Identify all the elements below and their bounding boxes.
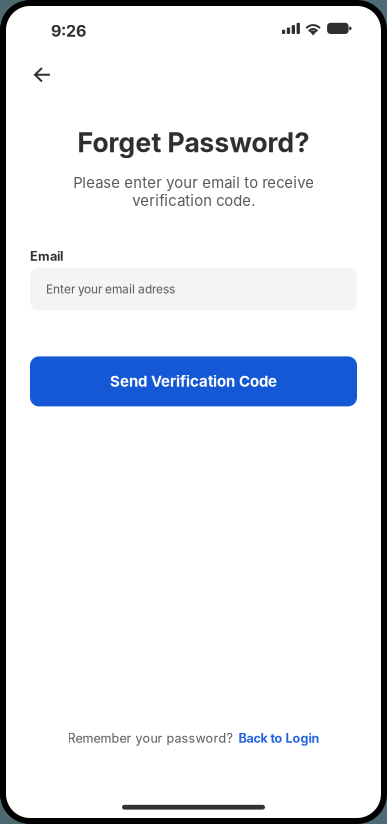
staticText: Enter your email adress: [46, 282, 175, 296]
staticText: Send Verification Code: [110, 372, 277, 390]
button[interactable]: Send Verification Code: [30, 356, 357, 406]
staticText: Back to Login: [238, 731, 319, 746]
staticText: Email: [30, 249, 63, 264]
staticText: Forget Password?: [77, 126, 309, 159]
staticText: 9:26: [51, 21, 86, 41]
button[interactable]: Back to Login: [238, 731, 319, 746]
staticText: Remember your password?: [67, 731, 232, 746]
staticText: Please enter your email to receive verif…: [73, 174, 314, 210]
button[interactable]: Back: [24, 57, 61, 92]
